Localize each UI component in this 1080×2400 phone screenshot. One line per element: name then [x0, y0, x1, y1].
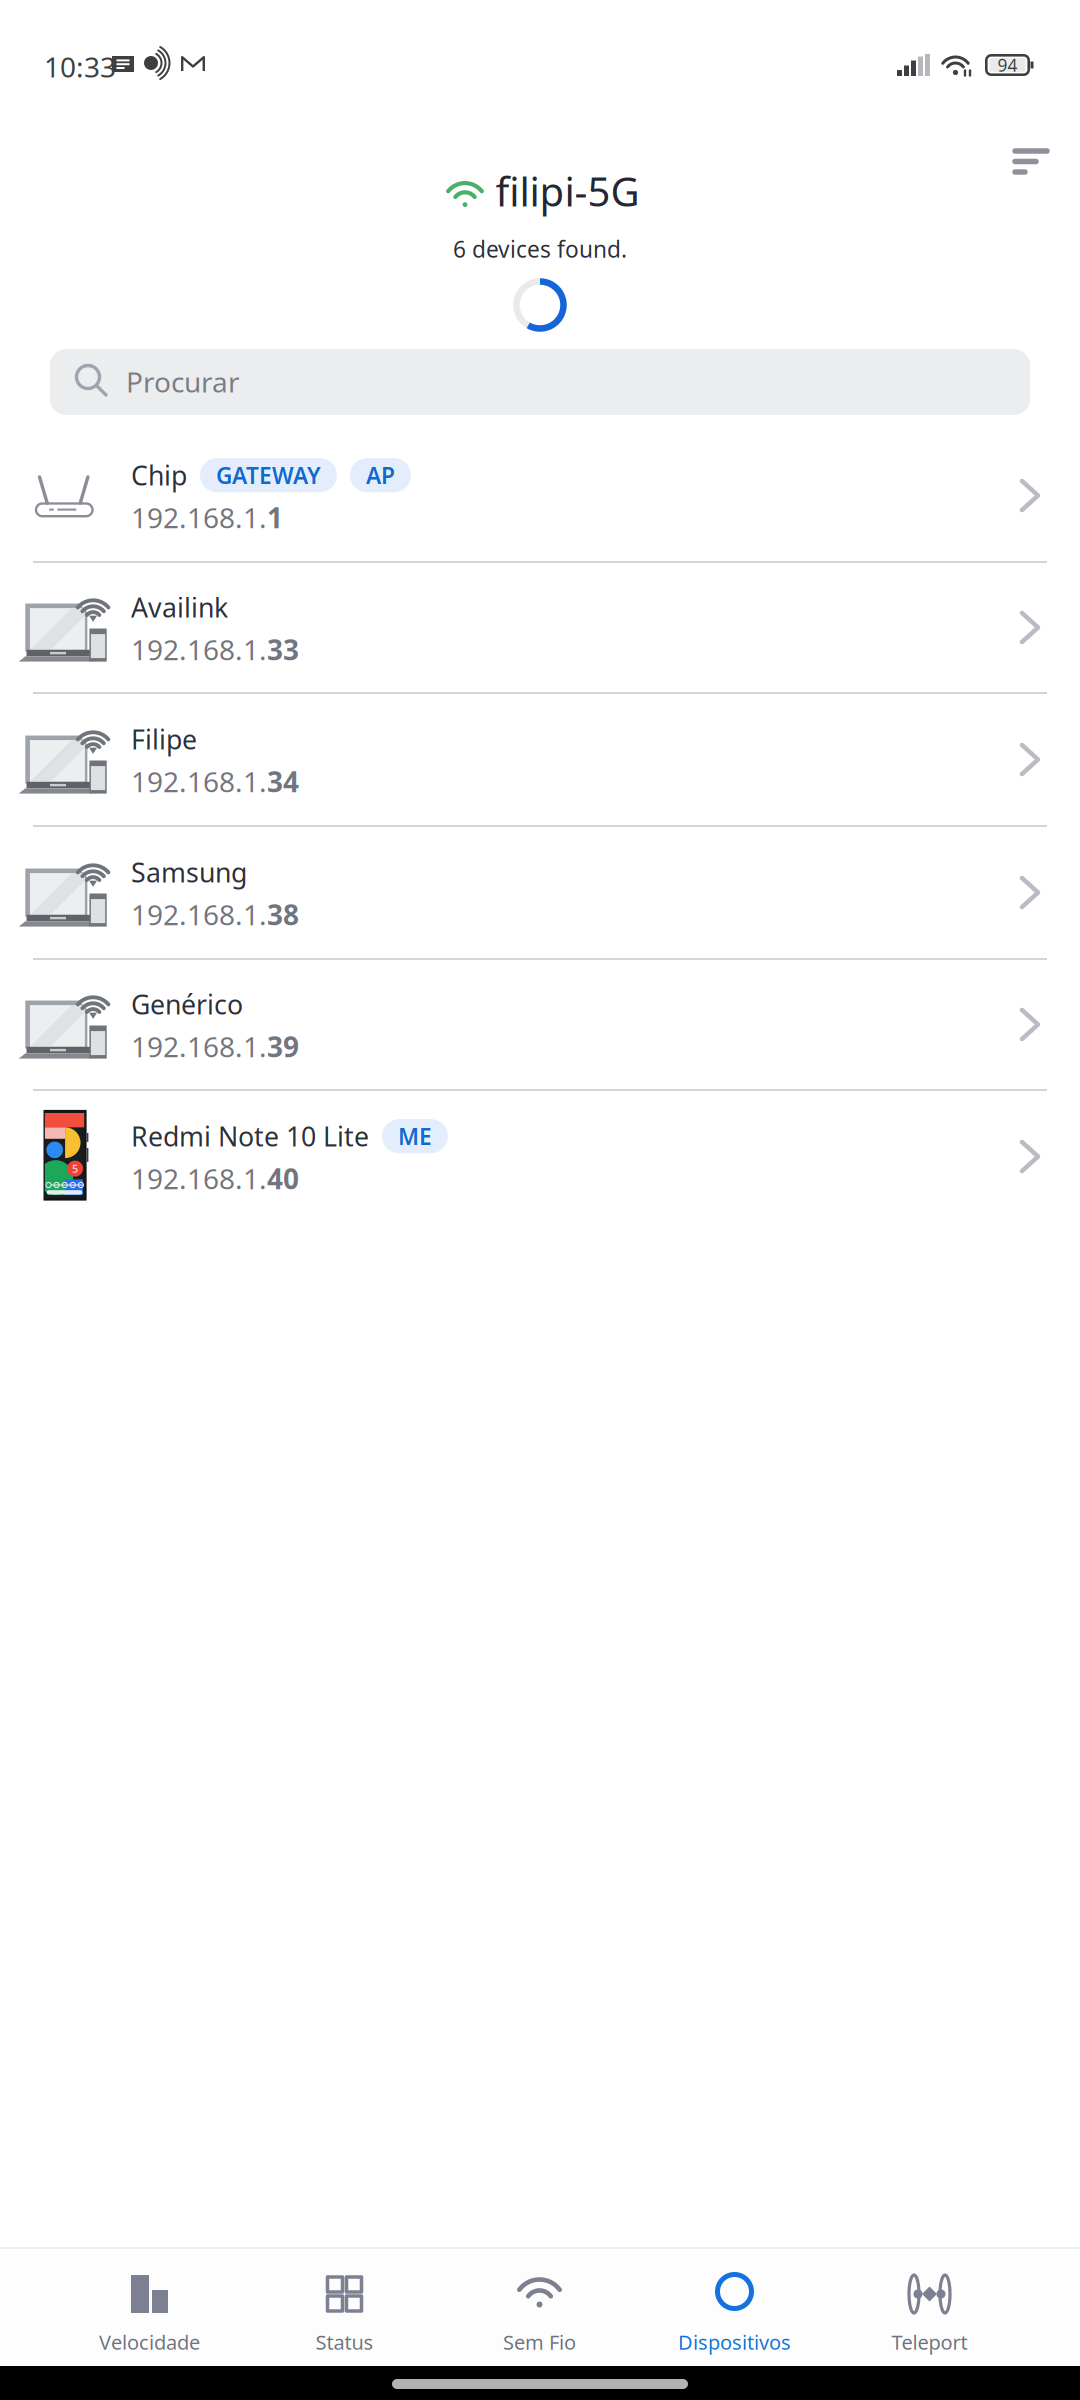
staticText: 38 [267, 896, 299, 933]
staticText: Dispositivos [678, 2329, 791, 2355]
staticText: 192.168.1. [131, 499, 267, 536]
button[interactable]: Genérico [0, 960, 1080, 1089]
staticText: 94 [997, 53, 1017, 76]
button[interactable]: Status [247, 2247, 442, 2366]
button[interactable]: 5 [0, 1091, 1080, 1222]
button[interactable]: Filter [991, 126, 1079, 200]
staticText: GATEWAY [216, 460, 321, 490]
staticText: 40 [267, 1160, 299, 1197]
button[interactable]: Teleport [832, 2247, 1027, 2366]
staticText: 192.168.1. [131, 631, 267, 668]
button[interactable]: Procurar [50, 349, 1030, 415]
staticText: 10:33 [44, 48, 116, 85]
staticText: Redmi Note 10 Lite [131, 1118, 369, 1154]
button[interactable]: Velocidade [52, 2247, 247, 2366]
staticText: Status [315, 2329, 373, 2355]
staticText: Velocidade [99, 2329, 200, 2355]
staticText: 34 [267, 763, 299, 800]
staticText: Sem Fio [503, 2329, 576, 2355]
staticText: Chip [131, 457, 187, 493]
staticText: 39 [267, 1028, 299, 1065]
button[interactable]: Filipe [0, 694, 1080, 825]
staticText: Genérico [131, 986, 243, 1022]
staticText: 192.168.1. [131, 763, 267, 800]
staticText: Availink [131, 589, 228, 625]
button[interactable]: Dispositivos [637, 2247, 832, 2366]
staticText: 192.168.1. [131, 1160, 267, 1197]
button[interactable]: Chip [0, 430, 1080, 561]
staticText: 192.168.1. [131, 1028, 267, 1065]
staticText: Procurar [126, 363, 240, 400]
staticText: 192.168.1. [131, 896, 267, 933]
button[interactable]: Samsung [0, 827, 1080, 958]
staticText: Filipe [131, 721, 197, 757]
staticText: Samsung [131, 854, 247, 890]
staticText: filipi-5G [495, 164, 639, 217]
button[interactable]: Sem Fio [442, 2247, 637, 2366]
staticText: AP [366, 460, 395, 490]
staticText: 33 [267, 631, 299, 668]
staticText: 5 [72, 1161, 78, 1176]
staticText: 6 devices found. [453, 234, 627, 264]
staticText: ME [398, 1121, 432, 1151]
button[interactable]: Availink [0, 563, 1080, 692]
staticText: Teleport [891, 2329, 967, 2355]
staticText: 1 [267, 499, 283, 536]
